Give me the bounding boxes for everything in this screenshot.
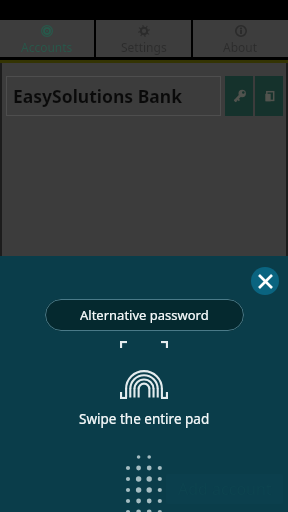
button[interactable]: About <box>193 20 288 57</box>
staticText: Accounts <box>21 39 73 55</box>
staticText: About <box>223 39 258 55</box>
button[interactable]: Show password <box>225 76 253 116</box>
button[interactable]: EasySolutions Bank <box>6 76 221 116</box>
button[interactable]: Accounts <box>0 20 94 57</box>
button[interactable]: Alternative password <box>45 299 244 331</box>
button[interactable]: Settings <box>96 20 191 57</box>
staticText: Swipe the entire pad <box>79 410 210 428</box>
button[interactable]: Close <box>251 267 279 295</box>
staticText: Alternative password <box>80 306 209 324</box>
staticText: EasySolutions Bank <box>13 84 183 108</box>
staticText: Settings <box>121 39 167 55</box>
button[interactable]: Copy <box>255 76 283 116</box>
